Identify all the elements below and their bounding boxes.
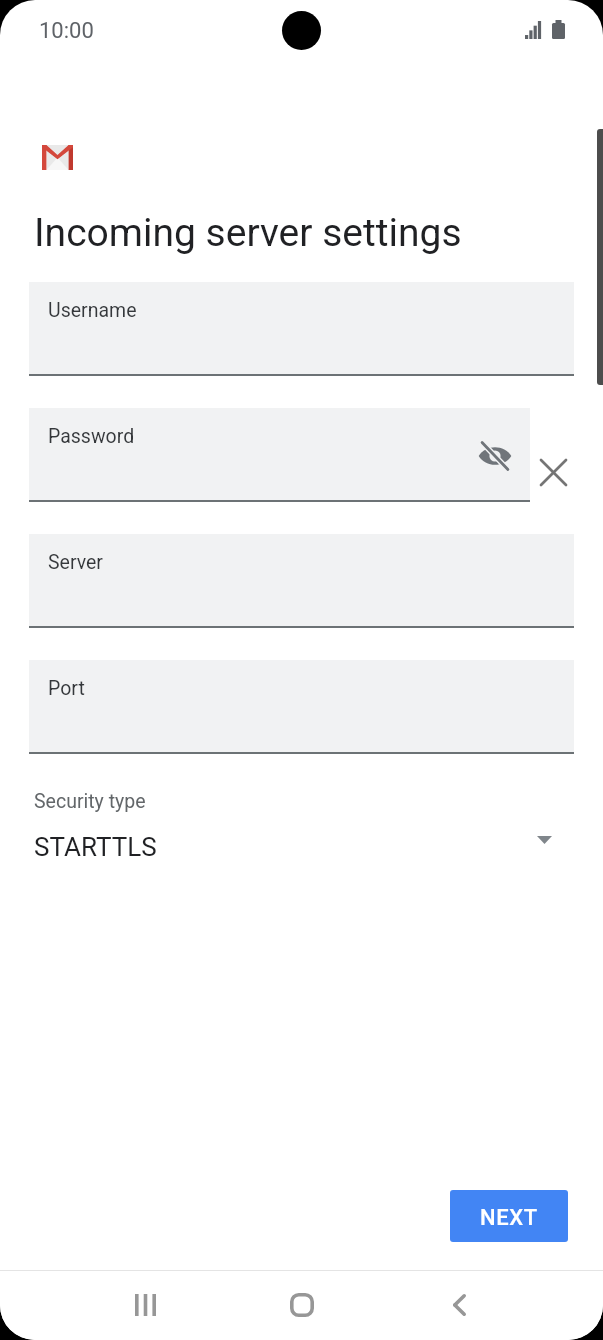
button[interactable]: Recents (110, 1270, 180, 1340)
staticText: Security type (34, 790, 146, 813)
button[interactable]: Home (267, 1270, 337, 1340)
staticText: Password (48, 425, 135, 448)
button[interactable]: Clear (529, 448, 577, 496)
button[interactable]: NEXT (450, 1190, 568, 1242)
button[interactable]: Username (29, 282, 574, 376)
button[interactable]: Server (29, 534, 574, 628)
button[interactable]: Password (29, 408, 530, 502)
button[interactable]: Security type (0, 780, 603, 866)
staticText: Port (48, 677, 85, 700)
staticText: Incoming server settings (34, 210, 462, 256)
button[interactable]: Back (424, 1270, 494, 1340)
button[interactable]: Show password (471, 435, 519, 483)
staticText: Server (48, 551, 103, 574)
staticText: 10:00 (39, 18, 94, 44)
staticText: NEXT (480, 1205, 538, 1231)
staticText: Username (48, 299, 137, 322)
button[interactable]: Port (29, 660, 574, 754)
staticText: STARTTLS (34, 832, 157, 862)
